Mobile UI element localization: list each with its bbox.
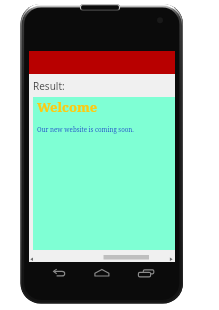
button[interactable]: Recent apps [131,262,162,285]
staticText: Result: [33,79,65,93]
button[interactable]: Back [44,262,75,285]
button[interactable]: Home [86,262,117,285]
staticText: Welcome [37,98,98,116]
staticText: Our new website is coming soon. [37,125,134,133]
